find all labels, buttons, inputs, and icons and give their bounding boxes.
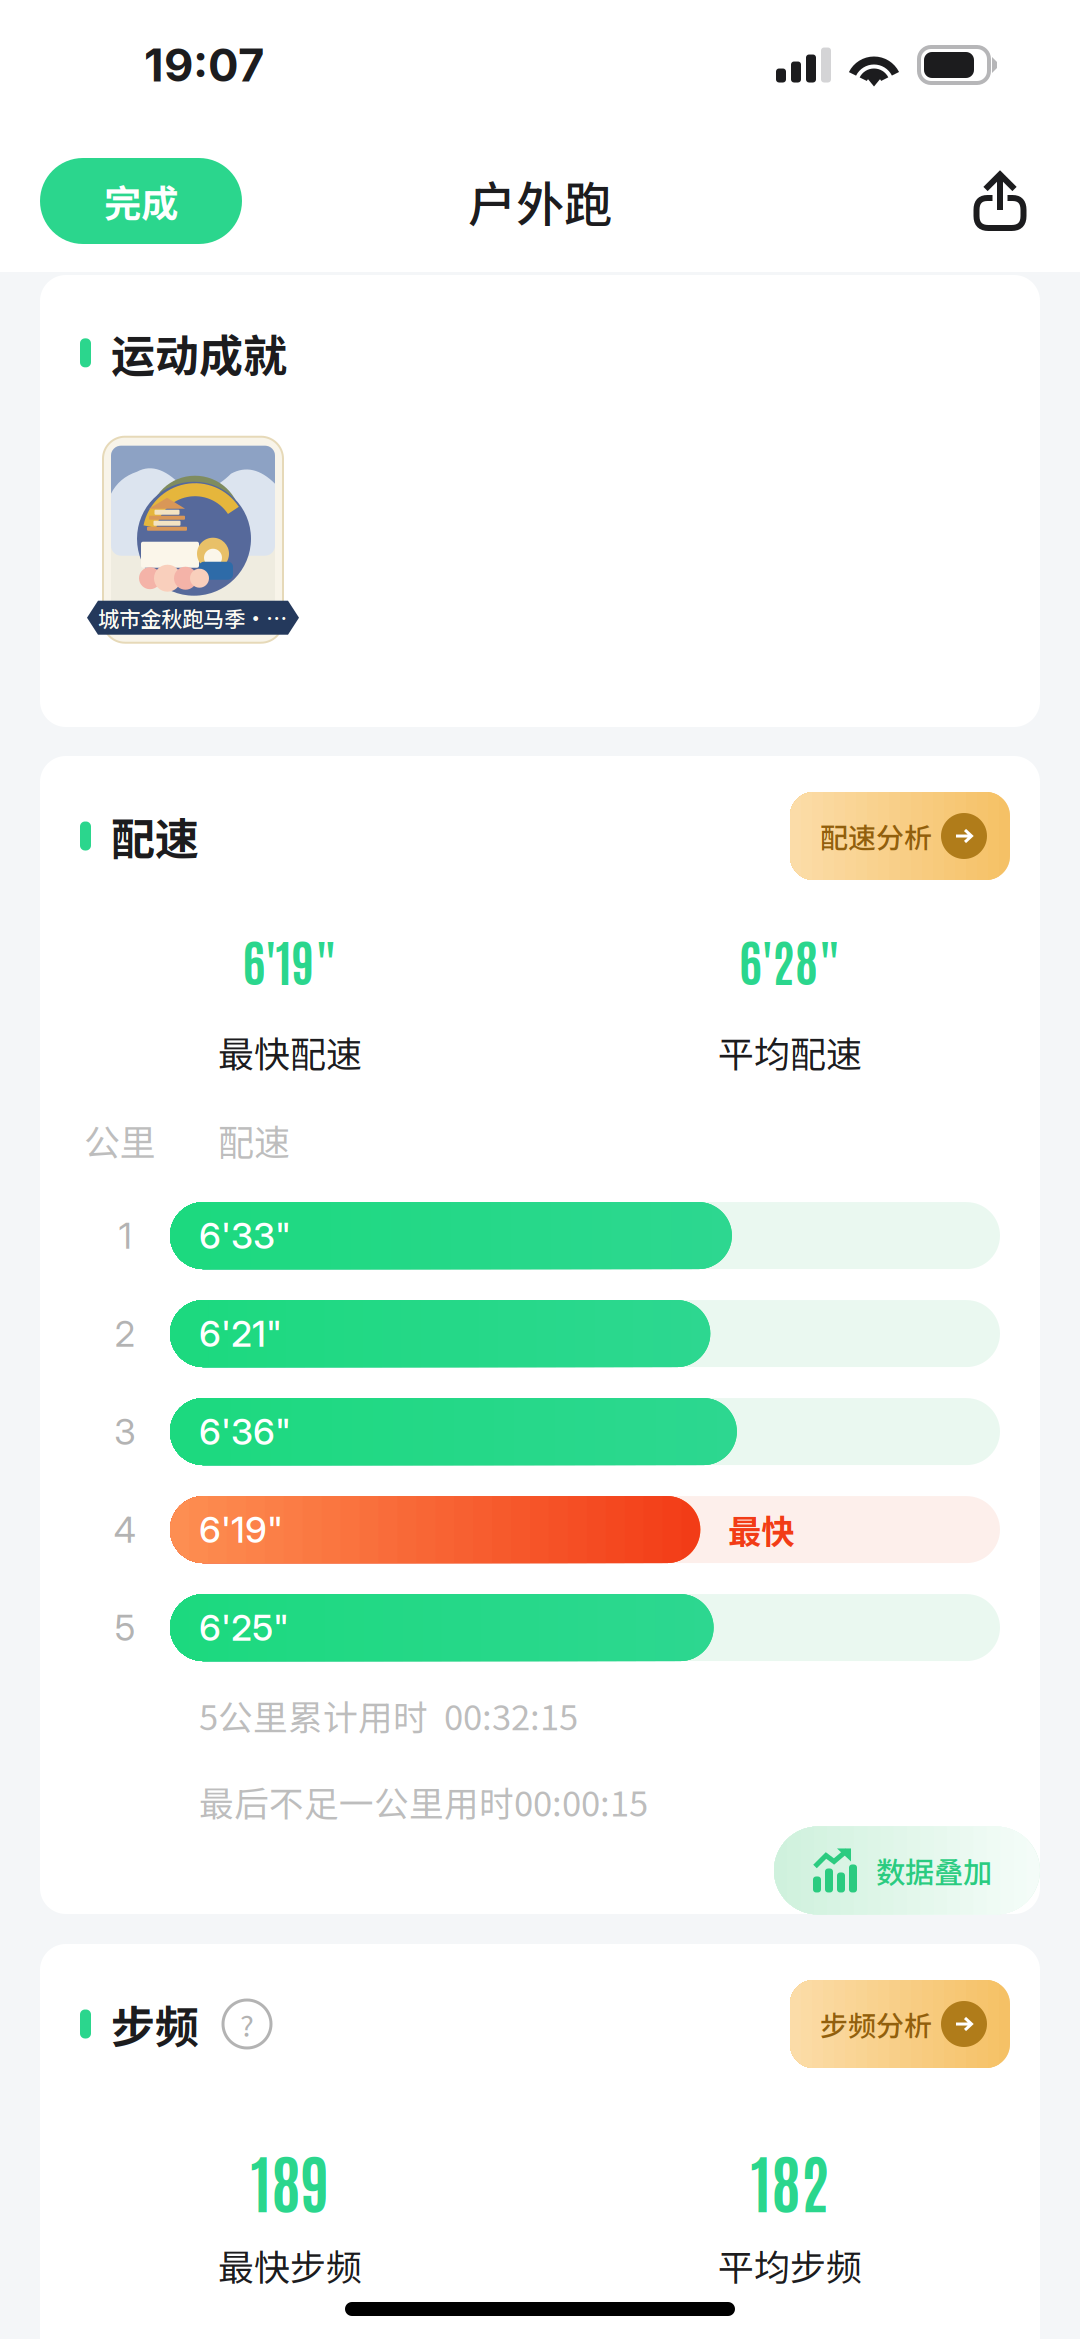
staticText: 公里 — [84, 1114, 156, 1166]
staticText: 最快步频 — [218, 2239, 362, 2291]
button[interactable]: 步频分析 — [790, 1980, 1010, 2068]
staticText: 5公里累计用时 00:32:15 — [199, 1690, 578, 1740]
staticText: 6'36" — [199, 1410, 291, 1453]
staticText: 配速 — [218, 1114, 290, 1166]
staticText: 配速分析 — [820, 816, 932, 856]
button[interactable]: 配速分析 — [790, 792, 1010, 880]
staticText: 完成 — [104, 174, 178, 228]
staticText: ? — [240, 2003, 254, 2045]
staticText: 配速 — [111, 804, 199, 868]
staticText: 19:07 — [144, 38, 264, 92]
staticText: 数据叠加 — [876, 1849, 992, 1892]
button[interactable]: 完成 — [40, 158, 242, 244]
staticText: 运动成就 — [111, 321, 287, 385]
staticText: 6'19" — [242, 928, 337, 992]
staticText: 步频分析 — [820, 2004, 932, 2044]
staticText: 步频 — [111, 1992, 199, 2056]
button[interactable]: Share — [952, 158, 1048, 244]
staticText: 6'21" — [199, 1312, 282, 1355]
staticText: 189 — [250, 2140, 329, 2221]
staticText: 2 — [114, 1312, 135, 1355]
staticText: 6'25" — [199, 1606, 289, 1649]
staticText: 6'19" — [199, 1508, 283, 1551]
staticText: 城市金秋跑马季·南京 — [98, 602, 288, 633]
staticText: 户外跑 — [468, 166, 612, 236]
staticText: 6'33" — [199, 1214, 291, 1257]
staticText: 5 — [114, 1606, 135, 1649]
staticText: 最快 — [728, 1505, 794, 1554]
staticText: 平均步频 — [718, 2239, 862, 2291]
staticText: 1 — [118, 1214, 131, 1257]
staticText: 6'28" — [739, 928, 841, 992]
staticText: 平均配速 — [718, 1026, 862, 1078]
staticText: 4 — [113, 1508, 136, 1551]
staticText: 182 — [750, 2140, 829, 2221]
button[interactable]: 数据叠加 — [774, 1826, 1040, 1914]
staticText: 3 — [114, 1410, 136, 1453]
staticText: 最快配速 — [218, 1026, 362, 1078]
staticText: 最后不足一公里用时00:00:15 — [199, 1776, 648, 1826]
